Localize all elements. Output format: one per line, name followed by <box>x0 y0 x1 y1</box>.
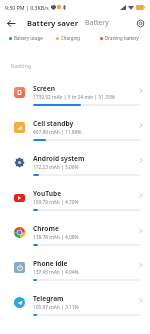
staticText: 172.23 mAh | 5.06% <box>33 164 79 171</box>
staticText: Screen <box>33 84 56 93</box>
button[interactable]: Back <box>0 14 22 32</box>
button[interactable]: Battery saver <box>26 16 80 30</box>
staticText: Cell standby <box>33 119 74 128</box>
staticText: 1739.52 mAh | 3 hr 24 min | 51.33% <box>33 94 115 101</box>
button[interactable]: Android system <box>0 151 150 186</box>
staticText: Chrome <box>33 224 59 233</box>
staticText: Phone idle <box>33 259 68 268</box>
staticText: 138.78 mAh | 4.08% <box>33 234 79 241</box>
button[interactable]: Telegram <box>0 291 150 326</box>
button[interactable]: Phone idle <box>0 256 150 291</box>
staticText: 9:50 PM | 0.3KB/s <box>5 4 49 11</box>
staticText: YouTube <box>33 189 62 198</box>
button[interactable]: YouTube <box>0 186 150 221</box>
staticText: Battery usage <box>14 35 43 41</box>
staticText: 137.45 mAh | 4.04% <box>33 269 79 276</box>
staticText: Android system <box>33 154 85 163</box>
staticText: Battery <box>85 18 109 28</box>
button[interactable]: Cell standby <box>0 116 150 151</box>
button[interactable]: Chrome <box>0 221 150 256</box>
staticText: 407.89 mAh | 11.99% <box>33 129 82 136</box>
staticText: Telegram <box>33 294 64 303</box>
button[interactable]: Screen <box>0 81 150 116</box>
staticText: Battery saver <box>27 18 79 28</box>
staticText: 159.79 mAh | 4.70% <box>33 199 79 206</box>
button[interactable]: Settings <box>130 14 150 32</box>
button[interactable]: Battery <box>84 16 110 30</box>
staticText: Ranking <box>11 62 31 69</box>
staticText: Charging <box>61 35 80 41</box>
staticText: 105.97 mAh | 3.11% <box>33 304 79 311</box>
staticText: Draining battery <box>105 35 139 41</box>
